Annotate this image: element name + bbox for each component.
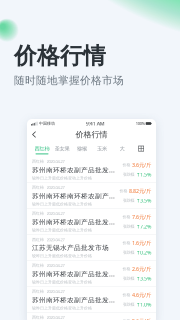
staticText: 较昨日上升最低价格变动上升价格 <box>32 176 92 181</box>
staticText: 西红柿 <box>32 263 44 268</box>
staticText: 江苏无锡水产品批发市场 <box>32 244 109 252</box>
staticText: 西红柿 <box>32 315 44 320</box>
button[interactable]: 西红柿 <box>27 157 156 183</box>
staticText: 较昨日上升最低价格变动上升价格 <box>32 306 92 311</box>
staticText: 涨跌幅 <box>122 276 134 281</box>
button[interactable]: 返回 <box>27 128 41 141</box>
staticText: 2020-04-27 <box>46 315 64 320</box>
staticText: 5.6元/斤 <box>132 317 151 320</box>
staticText: ↑3.5% <box>136 197 151 204</box>
staticText: 价格 <box>122 292 130 297</box>
staticText: 价格 <box>119 188 127 193</box>
button[interactable]: 西红柿 <box>27 235 156 261</box>
staticText: 西红柿 <box>32 159 44 164</box>
button[interactable]: 全部分类 <box>135 141 147 157</box>
staticText: 4.6元/斤 <box>132 291 151 298</box>
staticText: 较昨日上升最低价格变动上升价格 <box>32 228 92 233</box>
staticText: ↑0.2% <box>136 249 151 256</box>
staticText: 苏州南环桥南环桥农副产品批... <box>32 191 117 200</box>
button[interactable]: 西红柿 <box>27 261 156 287</box>
staticText: 猕猴 <box>77 145 87 152</box>
staticText: 2.6元/斤 <box>132 265 151 272</box>
staticText: 价格行情 <box>75 130 107 139</box>
staticText: 苏州南环桥农副产品批发市场 <box>32 295 120 304</box>
staticText: 2020-04-27 <box>46 289 64 294</box>
staticText: 中国移动 <box>39 121 55 126</box>
staticText: 较昨日上升最低价格变动上升价格 <box>32 253 92 258</box>
staticText: ↑7.2% <box>136 223 151 230</box>
button[interactable]: 西红柿 <box>27 183 156 209</box>
staticText: ↑1.0% <box>136 301 151 308</box>
button[interactable]: 猕猴 <box>72 141 92 157</box>
staticText: 西红柿 <box>32 289 44 294</box>
staticText: 玉米 <box>97 145 107 152</box>
staticText: 价格 <box>122 266 130 271</box>
staticText: 7.6元/斤 <box>132 213 151 220</box>
staticText: 1.6元/斤 <box>132 239 151 246</box>
staticText: 西红柿 <box>32 211 44 216</box>
staticText: ↑3.5% <box>136 275 151 282</box>
button[interactable]: 西红柿 <box>27 209 156 235</box>
staticText: 价格行情 <box>14 42 106 70</box>
staticText: 价格 <box>122 214 130 219</box>
staticText: 随时随地掌握价格市场 <box>14 74 124 87</box>
staticText: 西红柿 <box>34 145 49 152</box>
staticText: 圣女果 <box>54 145 69 152</box>
staticText: 8.82元/斤 <box>129 187 151 194</box>
staticText: 苏州南环桥农副产品批发市场 <box>32 165 120 174</box>
staticText: 2020-04-27 <box>46 237 64 242</box>
staticText: 2020-04-27 <box>46 159 64 164</box>
staticText: 9:41 AM <box>86 120 105 127</box>
staticText: 100% <box>136 121 145 126</box>
staticText: 2020-04-27 <box>46 263 64 268</box>
staticText: 苏州南环桥农副产品批发市场 <box>32 269 120 278</box>
staticText: 较昨日上升最低价格变动上升价格 <box>32 280 92 285</box>
button[interactable]: 西红柿 <box>27 313 156 320</box>
staticText: ↑1.5% <box>136 171 151 178</box>
staticText: 价格 <box>122 318 130 320</box>
button[interactable]: 大 <box>112 141 132 157</box>
staticText: 较昨日上升最低价格变动上升价格 <box>32 202 92 207</box>
staticText: 涨跌幅 <box>122 302 134 307</box>
staticText: 价格 <box>122 240 130 245</box>
staticText: 价格 <box>122 162 130 167</box>
staticText: 涨跌幅 <box>122 198 134 203</box>
staticText: 大 <box>119 145 124 152</box>
button[interactable]: 圣女果 <box>52 141 72 157</box>
staticText: 2020-04-27 <box>46 185 64 190</box>
staticText: 西红柿 <box>32 237 44 242</box>
button[interactable]: 玉米 <box>92 141 112 157</box>
staticText: 2020-04-27 <box>46 211 64 216</box>
staticText: 3.6元/斤 <box>132 161 151 168</box>
staticText: 涨跌幅 <box>122 172 134 177</box>
staticText: 西红柿 <box>32 185 44 190</box>
button[interactable]: 西红柿 <box>32 141 52 157</box>
staticText: 苏州南环桥农副产品批发市场 <box>32 217 120 226</box>
staticText: 涨跌幅 <box>122 250 134 255</box>
button[interactable]: 西红柿 <box>27 287 156 313</box>
staticText: 涨跌幅 <box>122 224 134 229</box>
